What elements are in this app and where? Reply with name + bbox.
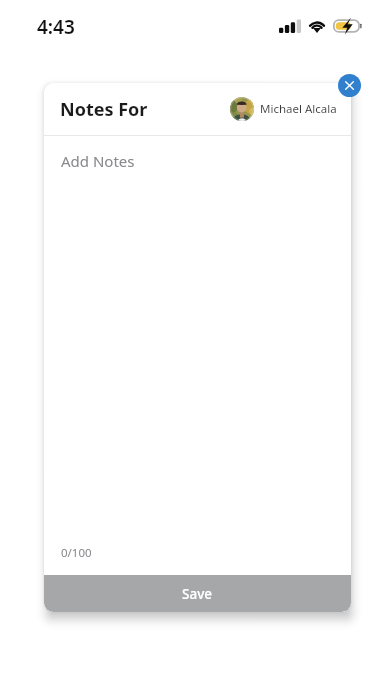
button[interactable]: Michael Alcala [230, 97, 337, 121]
button[interactable]: Save [44, 575, 351, 612]
button[interactable]: Close [338, 74, 361, 97]
staticText: Notes For [60, 97, 148, 122]
staticText: Michael Alcala [260, 101, 337, 117]
staticText: 0/100 [61, 545, 92, 561]
staticText: 4:43 [37, 14, 75, 40]
staticText: Save [182, 585, 213, 603]
staticText: Add Notes [61, 151, 135, 171]
button[interactable]: Add Notes [44, 136, 351, 575]
